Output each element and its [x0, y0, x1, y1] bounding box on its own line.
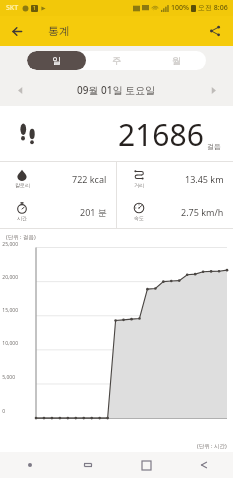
staticText: (단위 : 시간) [197, 442, 227, 450]
button[interactable]: 속도 [117, 195, 233, 228]
staticText: 100% [171, 3, 189, 13]
button[interactable]: Home [117, 452, 175, 478]
staticText: 09월 01일 토요일 [77, 83, 156, 97]
button[interactable]: Recents [59, 452, 117, 478]
button[interactable]: Assistant [0, 452, 59, 478]
staticText: (단위 : 걸음) [6, 233, 36, 241]
staticText: 1 [33, 5, 36, 12]
button[interactable]: Previous day [10, 80, 30, 100]
button[interactable]: 칼로리 [0, 162, 116, 195]
button[interactable]: 주 [86, 51, 146, 70]
staticText: 15,000 [2, 307, 18, 314]
staticText: 10,000 [2, 340, 18, 347]
staticText: 속도 [134, 215, 144, 221]
staticText: 시간 [17, 215, 27, 221]
button[interactable]: 시간 [0, 195, 116, 228]
staticText: 13.45 km [185, 173, 224, 185]
staticText: 2.75 km/h [181, 206, 224, 218]
staticText: 722 kcal [72, 173, 107, 185]
button[interactable]: Back [175, 452, 233, 478]
button[interactable]: Share [204, 20, 226, 42]
staticText: 21686 [118, 114, 204, 155]
staticText: 주 [112, 55, 121, 66]
staticText: 25,000 [2, 241, 18, 248]
button[interactable]: 21686 [0, 106, 233, 162]
staticText: 201 분 [80, 206, 107, 218]
staticText: 오전 8:06 [198, 3, 228, 13]
button[interactable]: 월 [146, 51, 206, 70]
staticText: 칼로리 [15, 182, 30, 188]
staticText: 20,000 [2, 274, 18, 281]
staticText: 5,000 [2, 374, 15, 381]
staticText: 통계 [48, 24, 70, 38]
button[interactable]: 일 [27, 51, 86, 70]
staticText: SKT [6, 3, 19, 13]
staticText: 월 [172, 55, 181, 66]
button[interactable]: 거리 [117, 162, 233, 195]
staticText: 0 [2, 408, 5, 415]
staticText: 걸음 [207, 142, 221, 151]
button[interactable]: Next day [203, 80, 223, 100]
staticText: 거리 [134, 182, 144, 188]
button[interactable]: Back [6, 20, 28, 42]
staticText: 일 [52, 55, 61, 66]
